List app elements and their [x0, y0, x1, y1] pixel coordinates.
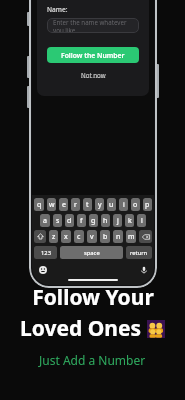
button[interactable]: q	[34, 198, 44, 211]
button[interactable]: Follow the Number	[47, 47, 139, 63]
button[interactable]: l	[137, 214, 146, 227]
staticText: n	[116, 232, 121, 242]
button[interactable]: d	[65, 214, 74, 227]
staticText: u	[109, 200, 114, 210]
button[interactable]: b	[100, 230, 110, 243]
staticText: Not now	[81, 71, 106, 79]
staticText: s	[56, 216, 60, 226]
button[interactable]: e	[59, 198, 68, 211]
staticText: Follow the Number	[61, 51, 125, 60]
staticText: Loved Ones	[20, 314, 147, 343]
button[interactable]: t	[83, 198, 92, 211]
button[interactable]: r	[71, 198, 80, 211]
button[interactable]: v	[87, 230, 97, 243]
staticText: r	[74, 200, 77, 210]
staticText: e	[62, 200, 66, 210]
staticText: 123	[41, 249, 51, 257]
staticText: i	[123, 200, 125, 210]
button[interactable]: h	[101, 214, 110, 227]
button[interactable]: g	[89, 214, 98, 227]
button[interactable]: x	[61, 230, 71, 243]
button[interactable]: k	[125, 214, 134, 227]
staticText: x	[64, 232, 68, 242]
button[interactable]: y	[95, 198, 104, 211]
staticText: space	[84, 249, 100, 257]
button[interactable]: Emoji keyboard	[38, 265, 47, 274]
staticText: z	[52, 232, 56, 242]
button[interactable]: Not now	[47, 71, 139, 79]
staticText: j	[117, 216, 119, 226]
staticText: c	[77, 232, 81, 242]
button[interactable]: u	[107, 198, 116, 211]
button[interactable]: s	[53, 214, 62, 227]
button[interactable]: Voice input	[139, 265, 148, 274]
staticText: w	[49, 200, 55, 210]
button[interactable]: p	[143, 198, 152, 211]
staticText: y	[98, 200, 102, 210]
staticText: t	[86, 200, 89, 210]
button[interactable]: w	[47, 198, 56, 211]
staticText: return	[130, 249, 148, 257]
staticText: h	[103, 216, 108, 226]
staticText: v	[90, 232, 94, 242]
button[interactable]: m	[126, 230, 136, 243]
staticText: o	[133, 200, 138, 210]
button[interactable]: space	[60, 246, 123, 259]
button[interactable]: c	[74, 230, 84, 243]
other: Backspace	[142, 233, 150, 241]
button[interactable]: Enter the name whatever you like	[47, 18, 139, 33]
button[interactable]: i	[119, 198, 128, 211]
staticText: a	[43, 216, 47, 226]
button[interactable]: f	[77, 214, 86, 227]
button[interactable]: Backspace	[139, 230, 152, 243]
staticText: b	[103, 232, 108, 242]
staticText: d	[67, 216, 72, 226]
staticText: q	[37, 200, 42, 210]
staticText: k	[128, 216, 132, 226]
button[interactable]: z	[49, 230, 58, 243]
staticText: Name:	[47, 5, 68, 14]
button[interactable]: n	[113, 230, 123, 243]
staticText: l	[141, 216, 143, 226]
button[interactable]: o	[131, 198, 140, 211]
staticText: m	[128, 232, 135, 242]
button[interactable]: 123	[34, 246, 57, 259]
staticText: p	[145, 200, 150, 210]
button[interactable]: return	[126, 246, 152, 259]
button[interactable]: j	[113, 214, 122, 227]
staticText: Enter the name whatever you like	[53, 18, 133, 33]
staticText: Follow Your	[32, 283, 154, 312]
other: Shift	[37, 233, 44, 240]
staticText: g	[91, 216, 96, 226]
button[interactable]: Shift	[34, 230, 46, 243]
staticText: f	[80, 216, 83, 226]
staticText: Just Add a Number	[39, 352, 146, 368]
button[interactable]: a	[40, 214, 50, 227]
